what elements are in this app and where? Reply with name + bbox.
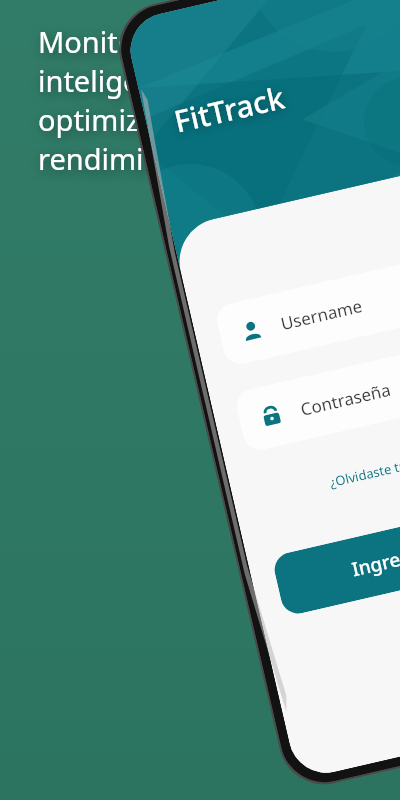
other: User bbox=[237, 316, 266, 345]
button[interactable]: ¿Olvidaste tu contraseña? bbox=[255, 435, 400, 512]
staticText: optimizar tu bbox=[38, 100, 204, 139]
button[interactable]: Password bbox=[233, 341, 400, 453]
other: Password bbox=[257, 402, 286, 430]
staticText: Contraseña bbox=[298, 378, 393, 421]
staticText: inteligente para bbox=[38, 61, 254, 100]
staticText: ¿Olvidaste tu contraseña? bbox=[328, 439, 400, 491]
staticText: FitTrack bbox=[170, 76, 288, 142]
staticText: Username bbox=[278, 294, 364, 335]
staticText: Ingresar bbox=[349, 539, 400, 582]
staticText: Monitoreo bbox=[38, 22, 181, 61]
button[interactable]: Ingresar bbox=[271, 505, 400, 617]
button[interactable]: User bbox=[213, 255, 400, 368]
staticText: rendimiento bbox=[38, 139, 206, 178]
